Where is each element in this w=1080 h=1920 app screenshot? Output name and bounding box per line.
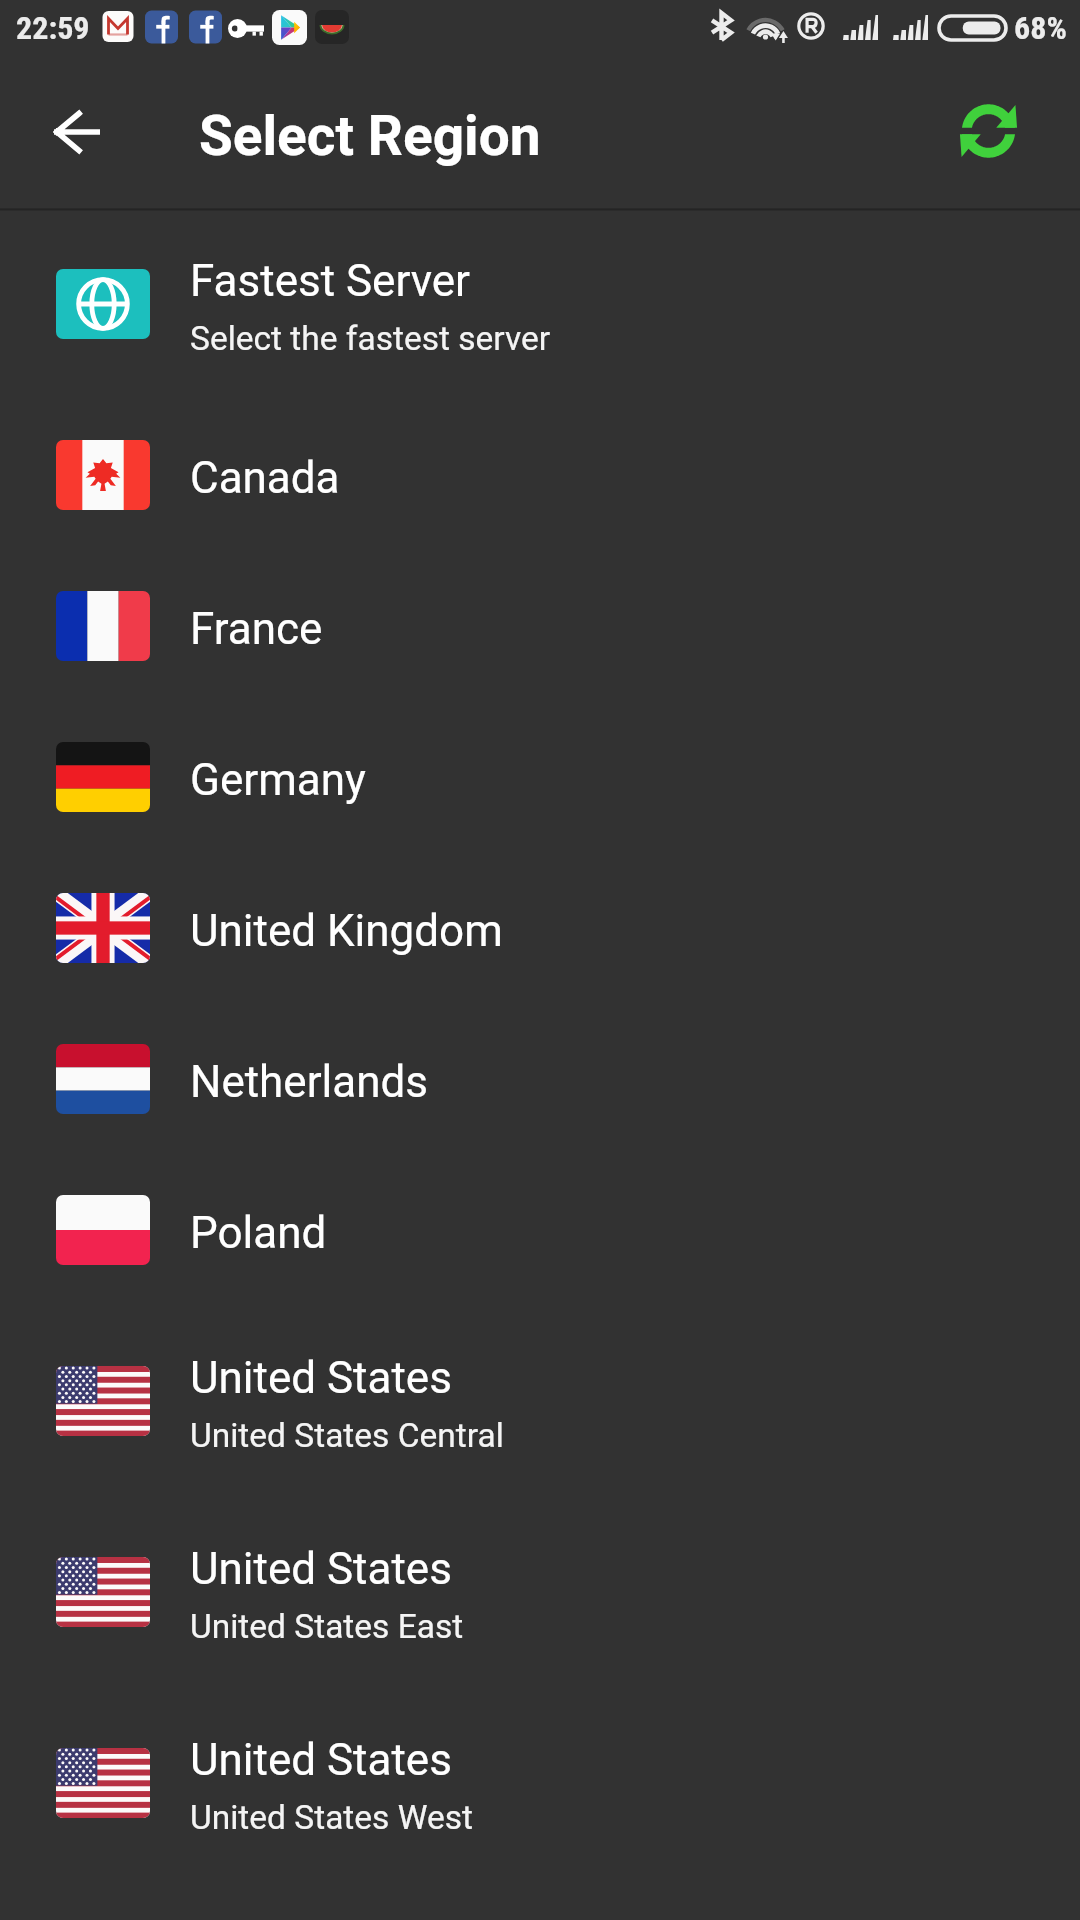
button[interactable]: Canada (0, 399, 1080, 550)
button[interactable]: Fastest Server (0, 208, 1080, 399)
staticText: United States (190, 1543, 452, 1595)
button[interactable]: France (0, 550, 1080, 701)
button[interactable]: Germany (0, 701, 1080, 852)
button[interactable]: United States (0, 1305, 1080, 1496)
button[interactable]: Netherlands (0, 1003, 1080, 1154)
staticText: United States Central (190, 1416, 504, 1455)
staticText: Netherlands (190, 1056, 429, 1108)
button[interactable]: Poland (0, 1154, 1080, 1305)
staticText: United States East (190, 1607, 464, 1646)
button[interactable]: United Kingdom (0, 852, 1080, 1003)
button[interactable]: Back (32, 87, 122, 177)
staticText: 22:59 (16, 9, 90, 47)
button[interactable]: Refresh (948, 91, 1028, 171)
staticText: United States (190, 1352, 452, 1404)
staticText: United States (190, 1734, 452, 1786)
staticText: Germany (190, 754, 366, 806)
staticText: Select the fastest server (190, 319, 551, 358)
staticText: Fastest Server (190, 255, 471, 307)
staticText: Poland (190, 1207, 327, 1259)
staticText: France (190, 603, 323, 655)
staticText: United Kingdom (190, 905, 503, 957)
staticText: United States West (190, 1798, 473, 1837)
staticText: Select Region (199, 104, 541, 168)
button[interactable]: United States (0, 1687, 1080, 1878)
button[interactable]: United States (0, 1496, 1080, 1687)
staticText: Canada (190, 452, 340, 504)
staticText: 68% (1014, 9, 1067, 47)
